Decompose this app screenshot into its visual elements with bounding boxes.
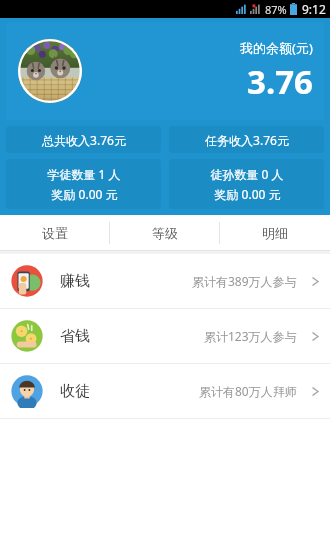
staticText: 省钱 <box>60 327 90 346</box>
staticText: 9:12 <box>302 1 326 17</box>
button[interactable]: 明细 <box>220 215 330 251</box>
button[interactable]: 学徒数量 1 人 <box>6 159 161 209</box>
staticText: 累计123万人参与 <box>204 328 297 344</box>
button[interactable]: 总共收入3.76元 <box>6 126 161 153</box>
staticText: 赚钱 <box>60 272 90 291</box>
staticText: 明细 <box>262 225 288 241</box>
button[interactable]: 设置 <box>0 215 110 251</box>
staticText: 等级 <box>152 225 178 241</box>
staticText: 87% <box>265 2 287 17</box>
staticText: 任务收入3.76元 <box>205 132 289 148</box>
staticText: 设置 <box>42 225 68 241</box>
staticText: 3.76 <box>247 59 313 104</box>
button[interactable]: 徒孙数量 0 人 <box>169 159 324 209</box>
other: 赚钱 <box>10 264 44 298</box>
button[interactable]: 我的余额(元) <box>6 22 324 120</box>
other: 省钱 <box>10 319 44 353</box>
staticText: 奖励 0.00 元 <box>51 186 118 202</box>
button[interactable]: 任务收入3.76元 <box>169 126 324 153</box>
staticText: 收徒 <box>60 382 90 401</box>
other: 收徒 <box>10 374 44 408</box>
staticText: 我的余额(元) <box>240 39 313 57</box>
button[interactable]: 赚钱 <box>0 254 330 308</box>
button[interactable]: 收徒 <box>0 364 330 418</box>
staticText: 学徒数量 1 人 <box>47 166 121 182</box>
button[interactable]: 省钱 <box>0 309 330 363</box>
staticText: 累计有389万人参与 <box>192 273 297 289</box>
staticText: 总共收入3.76元 <box>42 132 126 148</box>
staticText: 奖励 0.00 元 <box>214 186 281 202</box>
button[interactable]: 等级 <box>110 215 220 251</box>
staticText: 徒孙数量 0 人 <box>210 166 284 182</box>
staticText: 累计有80万人拜师 <box>199 383 297 399</box>
